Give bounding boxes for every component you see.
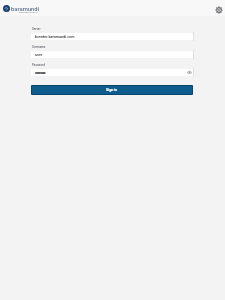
staticText: Server [32, 27, 41, 30]
button[interactable]: Sign in [32, 86, 192, 94]
staticText: user [35, 53, 43, 57]
staticText: baramundi [11, 6, 40, 13]
staticText: bcenter.baramundi.com [35, 35, 75, 39]
button[interactable]: Show password [31, 69, 193, 76]
staticText: Empower your IT [19, 11, 38, 14]
button[interactable]: user [31, 51, 193, 58]
button[interactable]: Settings [212, 3, 225, 16]
staticText: Username [32, 45, 46, 48]
button[interactable]: Show password [186, 69, 193, 76]
staticText: Sign in [106, 88, 118, 92]
staticText: Password [32, 63, 45, 66]
button[interactable]: bcenter.baramundi.com [31, 33, 193, 40]
